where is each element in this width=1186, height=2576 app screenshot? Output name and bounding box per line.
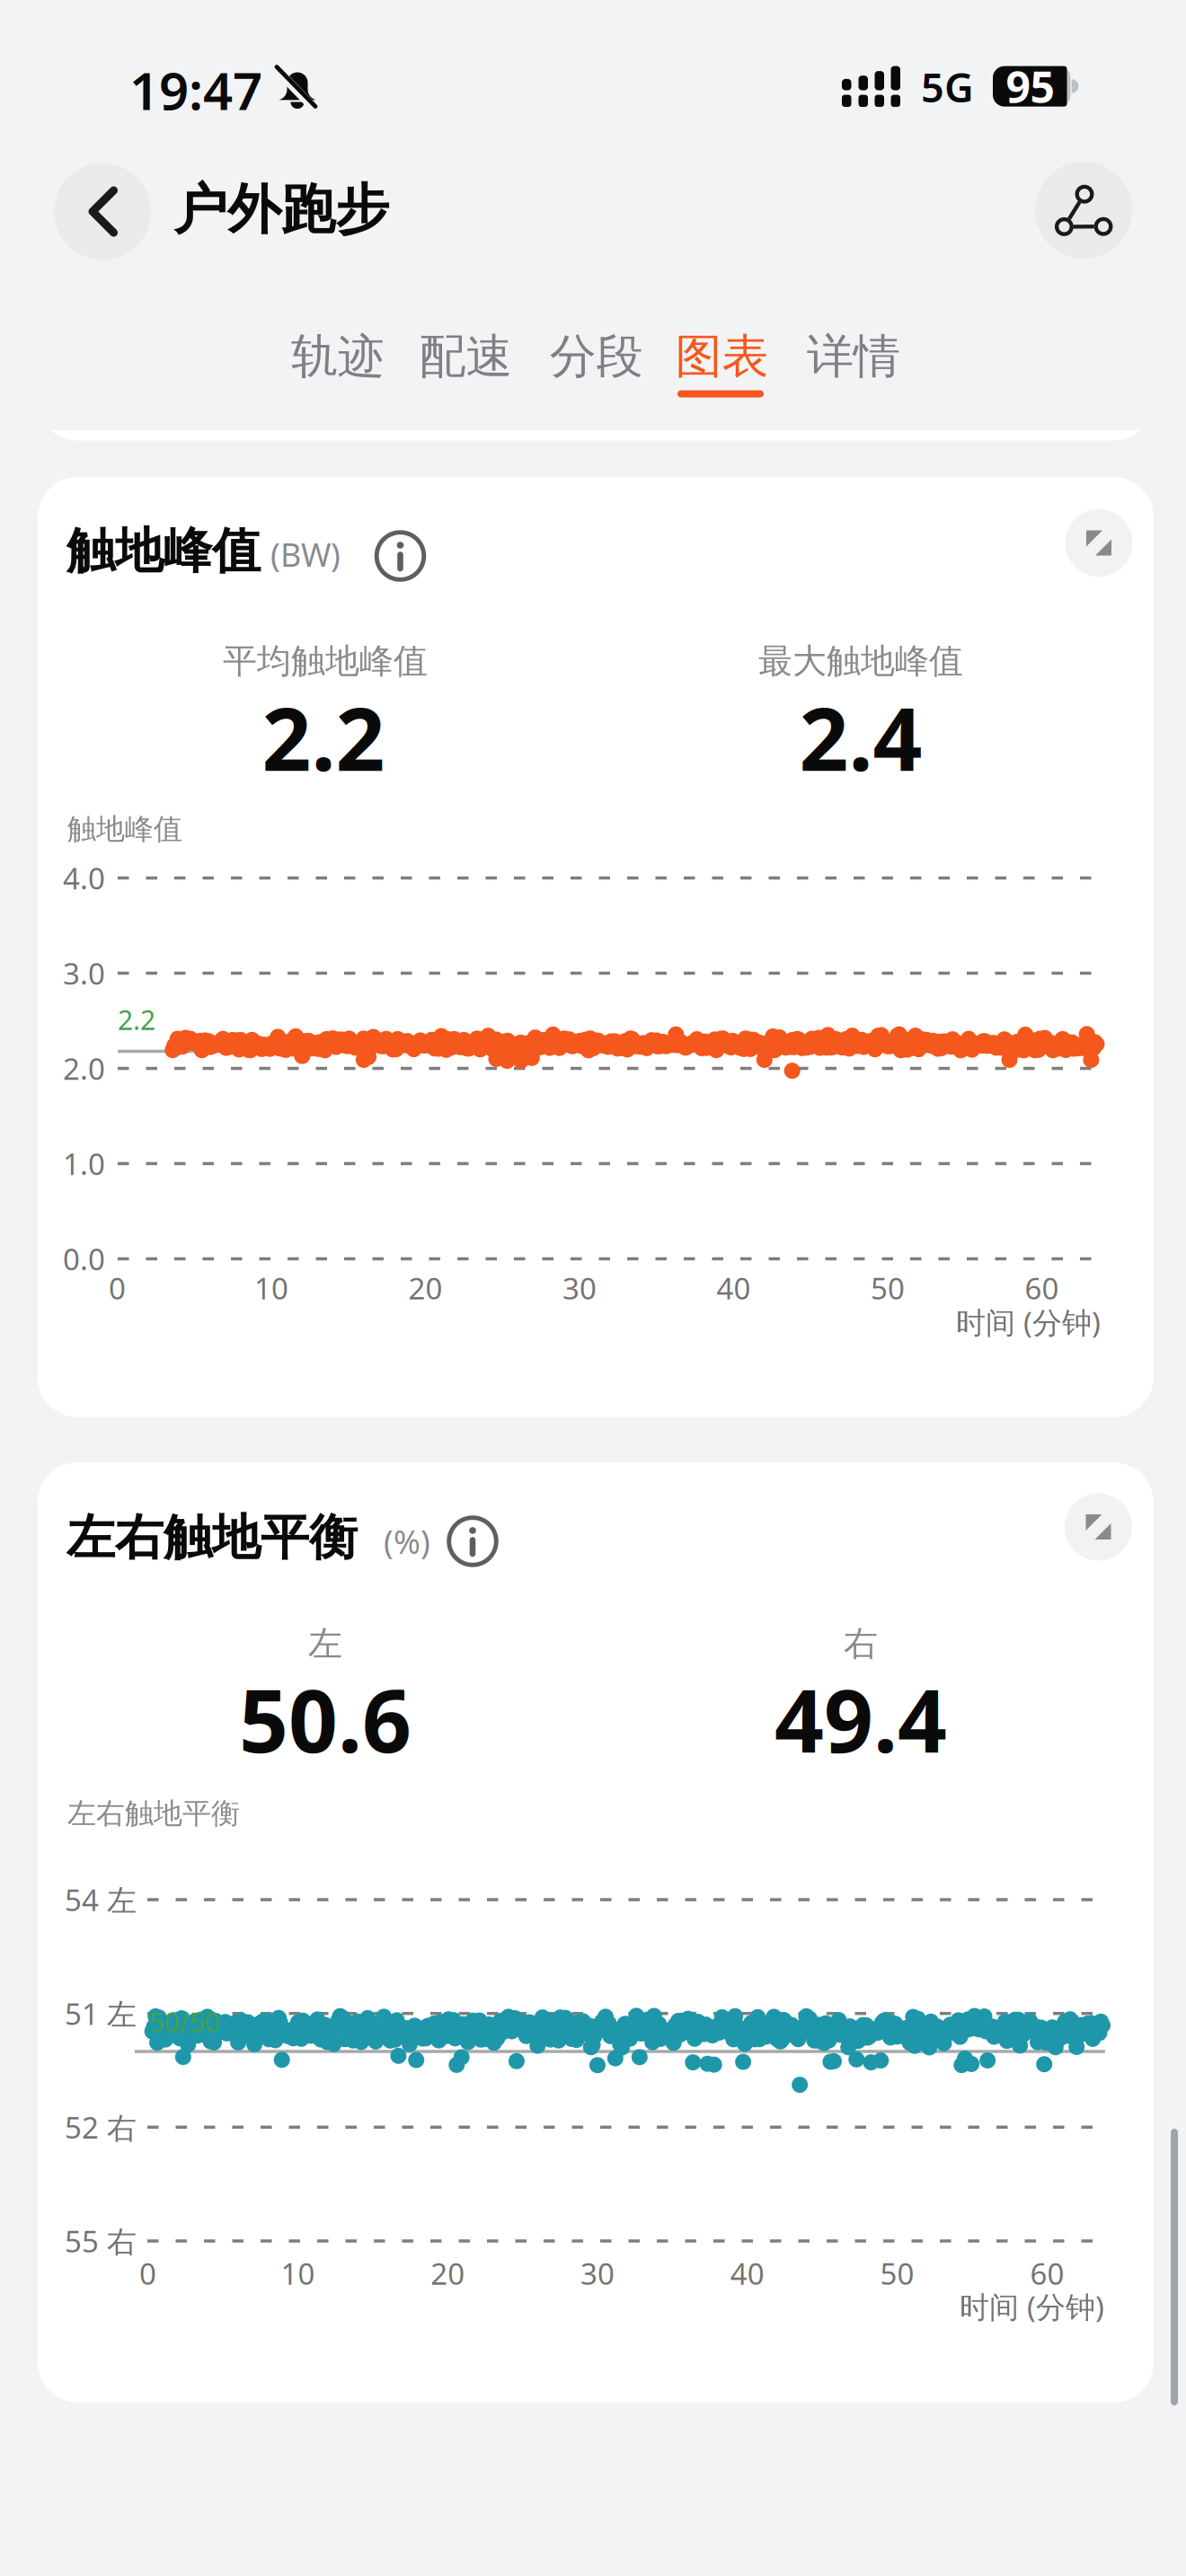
button[interactable]: Expand — [1065, 509, 1133, 577]
staticText: 2.2 — [262, 679, 385, 796]
staticText: 平均触地峰值 — [223, 640, 428, 683]
staticText: 55 右 — [65, 2221, 137, 2261]
staticText: 左 — [308, 1622, 342, 1665]
staticText: 触地峰值 — [67, 811, 182, 847]
staticText: 5G — [921, 59, 974, 114]
staticText: (BW) — [270, 532, 341, 576]
staticText: 51 左 — [65, 1993, 137, 2034]
staticText: 最大触地峰值 — [758, 640, 963, 683]
staticText: 3.0 — [63, 953, 105, 993]
staticText: 10 — [281, 2253, 315, 2293]
staticText: 右 — [844, 1622, 878, 1665]
staticText: 30 — [580, 2253, 615, 2293]
staticText: 20 — [408, 1268, 443, 1308]
staticText: 配速 — [419, 327, 513, 386]
staticText: 时间 (分钟) — [956, 1302, 1101, 1342]
staticText: (%) — [384, 1519, 430, 1563]
button[interactable]: 分段 — [550, 327, 643, 386]
staticText: 0.0 — [63, 1239, 105, 1279]
staticText: 图表 — [675, 327, 769, 386]
staticText: 50 — [880, 2253, 914, 2293]
staticText: 4.0 — [63, 858, 105, 898]
staticText: 10 — [254, 1268, 288, 1308]
staticText: 50/50 — [149, 2003, 220, 2040]
staticText: 95 — [1006, 57, 1054, 116]
button[interactable]: Share — [1035, 162, 1132, 259]
button[interactable]: Info — [444, 1513, 501, 1570]
staticText: 50 — [871, 1268, 905, 1308]
button[interactable]: 轨迹 — [291, 327, 385, 386]
staticText: 40 — [717, 1268, 751, 1308]
staticText: 60 — [1025, 1268, 1059, 1308]
staticText: 0 — [139, 2253, 156, 2293]
staticText: 轨迹 — [291, 327, 385, 386]
staticText: 60 — [1030, 2253, 1064, 2293]
staticText: 52 右 — [65, 2107, 137, 2147]
button[interactable]: 详情 — [807, 327, 900, 386]
button[interactable]: Back — [54, 163, 151, 260]
staticText: 左右触地平衡 — [67, 1795, 240, 1831]
staticText: 40 — [730, 2253, 764, 2293]
staticText: 2.4 — [799, 679, 922, 796]
staticText: 30 — [562, 1268, 597, 1308]
staticText: 1.0 — [63, 1143, 105, 1184]
staticText: 详情 — [807, 327, 900, 386]
staticText: 时间 (分钟) — [960, 2286, 1104, 2327]
staticText: 49.4 — [774, 1660, 947, 1778]
staticText: 0 — [109, 1268, 126, 1308]
staticText: 2.2 — [118, 1001, 155, 1038]
staticText: 54 左 — [65, 1879, 137, 1920]
button[interactable]: 图表 — [675, 327, 769, 386]
button[interactable]: 配速 — [419, 327, 513, 386]
button[interactable]: Expand — [1065, 1493, 1132, 1561]
staticText: 左右触地平衡 — [66, 1507, 358, 1568]
staticText: 2.0 — [63, 1048, 105, 1089]
button[interactable]: Info — [372, 527, 429, 585]
staticText: 分段 — [550, 327, 643, 386]
staticText: 触地峰值 — [66, 520, 261, 582]
staticText: 50.6 — [239, 1660, 412, 1778]
staticText: 20 — [431, 2253, 465, 2293]
staticText: 19:47 — [129, 54, 262, 125]
staticText: 户外跑步 — [173, 176, 389, 244]
